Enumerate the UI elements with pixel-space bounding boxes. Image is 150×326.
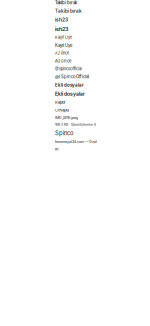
- staticText: forumroyal34.com — Özel: [55, 140, 97, 144]
- staticText: Az önce: [55, 58, 71, 64]
- staticText: Ekli dosyalar: [55, 82, 84, 88]
- staticText: Spinco: [55, 130, 74, 137]
- staticText: ish23: [55, 26, 68, 32]
- staticText: Takibi bırak: [55, 8, 82, 14]
- staticText: @rSpincoOfficial: [55, 74, 89, 79]
- staticText: Kayıt Üye: [55, 43, 72, 48]
- staticText: Rapor: [55, 100, 66, 105]
- staticText: ish23: [55, 17, 68, 23]
- staticText: Az önce: [55, 51, 69, 55]
- staticText: #1: [55, 147, 59, 151]
- staticText: @SpincoOfficial: [55, 67, 82, 71]
- staticText: Cevapla: [55, 108, 69, 112]
- staticText: Takibi bırak: [55, 0, 77, 5]
- staticText: Kayıt Üye: [55, 35, 72, 40]
- staticText: IMG_0015.jpeg: [55, 116, 78, 120]
- staticText: 109.3 KB · Görüntülenme 0: [55, 123, 96, 127]
- staticText: Ekli dosyalar: [55, 91, 85, 97]
